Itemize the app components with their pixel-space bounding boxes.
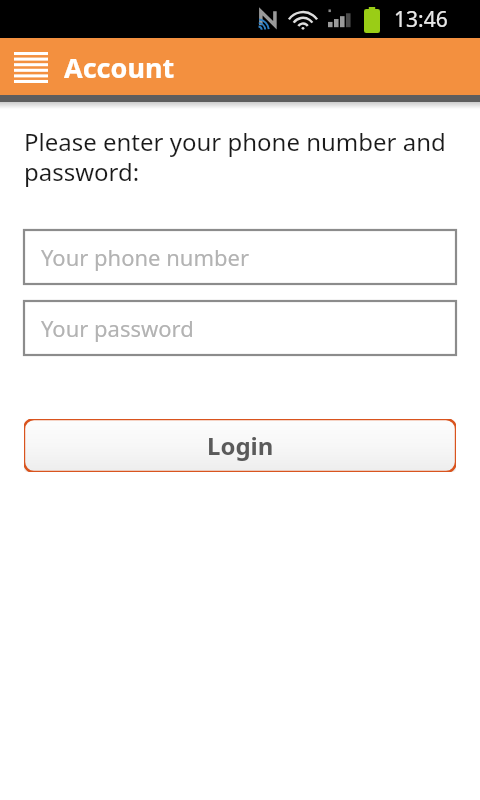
button[interactable]: Login [24,419,456,472]
staticText: Account [64,49,175,86]
staticText: Login [207,429,274,462]
button[interactable]: Your phone number [24,230,456,284]
staticText: 13:46 [394,5,448,34]
staticText: Please enter your phone number and passw… [24,125,456,188]
staticText: Your password [41,313,194,343]
button[interactable]: Your password [24,301,456,355]
staticText: Your phone number [41,242,250,272]
button[interactable]: Open navigation menu [10,47,52,87]
